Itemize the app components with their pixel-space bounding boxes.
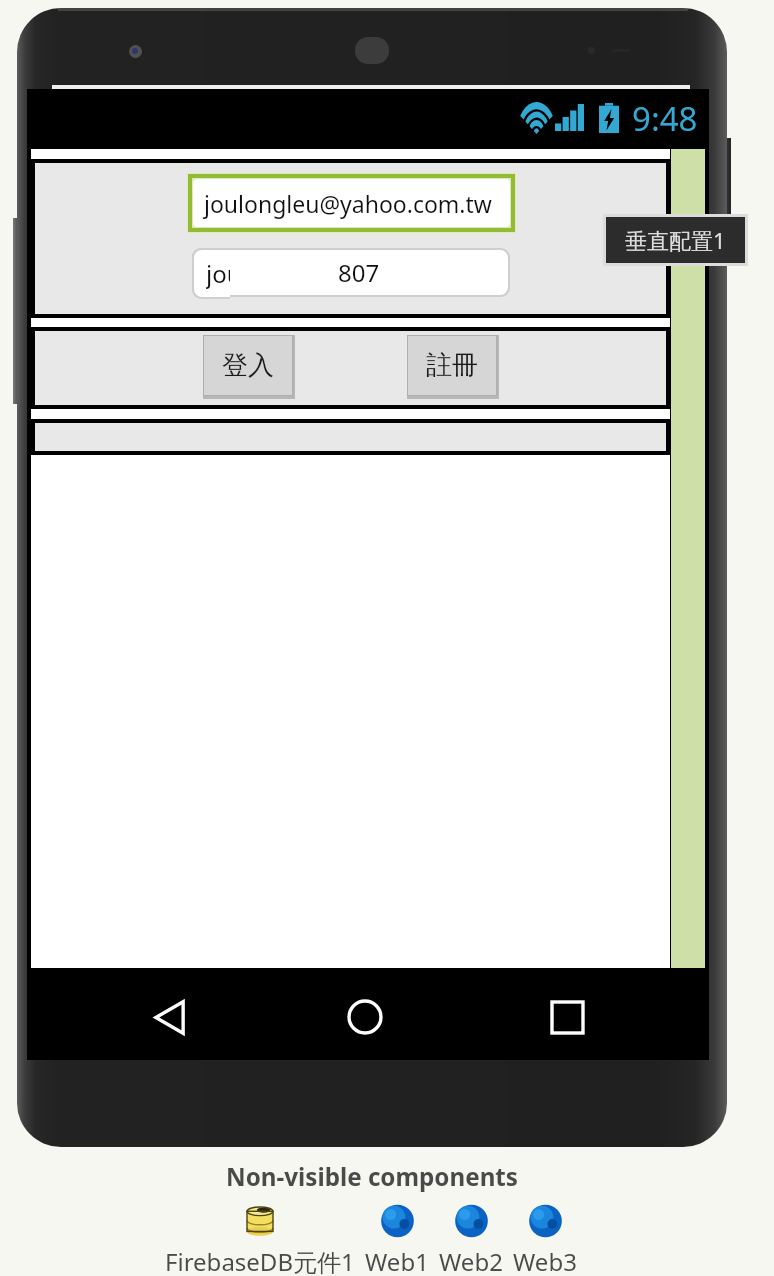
staticText: Web1 (365, 1245, 429, 1276)
staticText: Web3 (513, 1245, 577, 1276)
button[interactable]: Web1 (365, 1203, 429, 1276)
button[interactable]: 807 (194, 250, 508, 295)
button[interactable]: Back (139, 987, 199, 1047)
staticText: jou (206, 257, 230, 290)
staticText: Web2 (439, 1245, 503, 1276)
button[interactable]: joulongleu@yahoo.com.tw (193, 179, 510, 227)
button[interactable]: Web2 (439, 1203, 503, 1276)
button[interactable]: Home (335, 987, 395, 1047)
staticText: joulongleu@yahoo.com.tw (204, 188, 492, 219)
staticText: FirebaseDB元件1 (165, 1245, 355, 1276)
button[interactable]: jou (194, 250, 230, 297)
button[interactable]: Recent apps (537, 987, 597, 1047)
staticText: 9:48 (632, 96, 698, 140)
staticText: 註冊 (426, 349, 478, 382)
button[interactable]: 註冊 (408, 336, 496, 395)
staticText: 垂直配置1 (625, 225, 726, 255)
staticText: Non-visible components (226, 1160, 518, 1193)
staticText: 807 (338, 256, 380, 289)
staticText: 登入 (222, 349, 274, 382)
button[interactable]: 登入 (204, 336, 292, 395)
button[interactable]: FirebaseDB元件1 (165, 1203, 355, 1276)
button[interactable]: Web3 (513, 1203, 577, 1276)
